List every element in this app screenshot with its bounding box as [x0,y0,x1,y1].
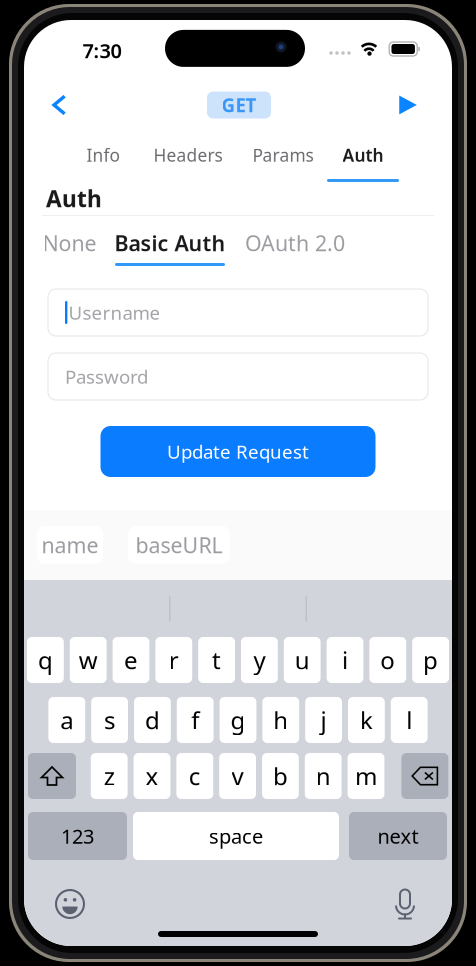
button[interactable]: Delete [401,753,448,799]
button[interactable]: OAuth 2.0 [245,230,345,266]
staticText: Password [65,364,148,389]
button[interactable]: b [262,753,299,799]
staticText: z [104,760,115,792]
staticText: v [232,760,244,792]
staticText: GET [221,93,256,117]
button[interactable]: f [177,697,214,743]
staticText: k [360,704,373,736]
staticText: e [124,644,138,676]
button[interactable]: g [220,697,256,743]
button[interactable]: Dictation [382,886,428,922]
button[interactable]: s [91,697,128,743]
staticText: s [104,704,115,736]
button[interactable]: e [113,637,149,683]
button[interactable]: a [48,697,85,743]
button[interactable]: name [37,526,103,564]
staticText: space [209,823,263,849]
button[interactable]: t [198,637,235,683]
staticText: j [321,704,327,736]
staticText: n [316,760,331,792]
staticText: x [145,760,158,792]
staticText: d [145,704,160,736]
staticText: a [60,704,73,736]
staticText: b [273,760,288,792]
staticText: Headers [153,143,222,166]
staticText: OAuth 2.0 [245,229,345,257]
staticText: h [273,704,288,736]
button[interactable]: n [305,753,342,799]
staticText: f [191,704,199,736]
button[interactable]: m [348,753,384,799]
button[interactable]: x [134,753,170,799]
button[interactable]: None [43,230,96,266]
staticText: q [38,644,53,676]
button[interactable]: h [262,697,299,743]
button[interactable]: baseURL [128,526,230,564]
staticText: r [169,644,179,676]
button[interactable]: o [369,637,406,683]
staticText: c [189,760,201,792]
staticText: m [355,760,377,792]
button[interactable]: i [327,637,363,683]
button[interactable]: l [391,697,428,743]
staticText: name [41,531,98,559]
button[interactable]: space [133,812,339,860]
button[interactable]: z [91,753,128,799]
button[interactable]: r [155,637,192,683]
button[interactable]: c [176,753,213,799]
button[interactable]: q [27,637,64,683]
staticText: u [295,644,310,676]
button[interactable]: u [284,637,321,683]
staticText: None [42,229,96,257]
staticText: i [342,644,348,676]
button[interactable]: 123 [28,812,127,860]
button[interactable]: j [305,697,342,743]
button[interactable]: Basic Auth [115,230,225,266]
staticText: t [212,644,221,676]
staticText: p [423,644,438,676]
button[interactable]: GET [207,91,271,118]
button[interactable]: w [70,637,107,683]
button[interactable]: v [219,753,256,799]
button[interactable]: p [412,637,449,683]
button[interactable]: Params [239,129,327,182]
staticText: Basic Auth [114,229,225,257]
button[interactable]: Back [33,81,85,129]
staticText: Info [86,143,119,166]
staticText: y [253,644,265,676]
button[interactable]: Shift [28,753,76,799]
button[interactable]: next [349,812,447,860]
button[interactable]: Emoji keyboard [47,886,93,922]
button[interactable]: Info [69,129,137,182]
staticText: g [230,704,245,736]
button[interactable]: Send request [382,81,434,129]
button[interactable]: Headers [137,129,239,182]
staticText: l [406,704,412,736]
button[interactable]: y [241,637,278,683]
staticText: Update Request [167,439,309,464]
staticText: Username [68,300,160,325]
staticText: baseURL [135,531,222,559]
staticText: 7:30 [82,37,121,64]
staticText: 123 [61,823,94,849]
staticText: Params [252,143,313,166]
button[interactable]: d [134,697,171,743]
button[interactable]: Update Request [100,426,375,477]
staticText: w [79,644,98,676]
button[interactable]: k [348,697,385,743]
staticText: o [380,644,395,676]
button[interactable]: Auth [327,129,399,182]
staticText: Auth [342,143,383,166]
staticText: next [377,823,418,849]
staticText: Auth [46,183,102,213]
